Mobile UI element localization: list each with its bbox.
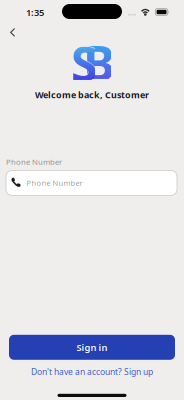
staticText: Phone Number — [6, 157, 62, 167]
staticText: 1:35 — [26, 6, 44, 19]
staticText: Welcome back, Customer — [35, 89, 149, 101]
staticText: Sign in — [76, 341, 107, 353]
button[interactable]: Sign in — [9, 335, 175, 360]
button[interactable]: Back — [0, 21, 31, 43]
button[interactable]: Don't have an account? Sign up — [0, 366, 184, 378]
staticText: S — [70, 31, 96, 94]
staticText: Phone Number — [26, 178, 82, 188]
staticText: Don't have an account? Sign up — [31, 366, 153, 377]
